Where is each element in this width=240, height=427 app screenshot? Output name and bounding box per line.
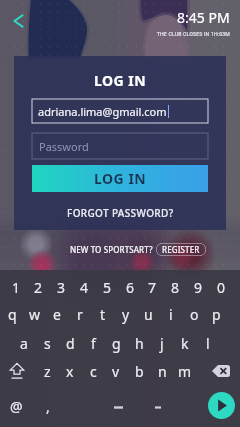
button[interactable]: 6 bbox=[119, 274, 141, 300]
staticText: 4 bbox=[80, 278, 89, 297]
button[interactable]: LOG IN bbox=[32, 165, 208, 192]
button[interactable]: 9 bbox=[187, 274, 209, 300]
staticText: 0 bbox=[217, 278, 226, 297]
staticText: t bbox=[100, 305, 106, 324]
button[interactable]: d bbox=[59, 330, 81, 356]
button[interactable]: k bbox=[174, 330, 196, 356]
button[interactable]: j bbox=[151, 330, 173, 356]
staticText: l bbox=[206, 334, 210, 353]
button[interactable]: 1 bbox=[5, 274, 27, 300]
button[interactable]: 4 bbox=[73, 274, 95, 300]
button[interactable]: f bbox=[82, 330, 104, 356]
staticText: c bbox=[90, 362, 97, 381]
button[interactable]: 5 bbox=[96, 274, 118, 300]
staticText: f bbox=[91, 334, 96, 353]
staticText: Password bbox=[39, 139, 89, 154]
staticText: 6 bbox=[126, 278, 135, 297]
staticText: NEW TO SPORTSART? bbox=[70, 244, 153, 255]
button[interactable]: c bbox=[82, 358, 104, 384]
button[interactable]: Backspace bbox=[208, 358, 234, 384]
staticText: z bbox=[44, 362, 51, 381]
button[interactable]: r bbox=[69, 301, 91, 327]
staticText: w bbox=[29, 305, 41, 324]
staticText: e bbox=[53, 305, 61, 324]
staticText: 2 bbox=[34, 278, 43, 297]
staticText: d bbox=[66, 334, 75, 353]
button[interactable]: u bbox=[137, 301, 159, 327]
button[interactable]: Shift bbox=[4, 358, 30, 384]
button[interactable]: z bbox=[36, 358, 58, 384]
staticText: s bbox=[44, 334, 51, 353]
staticText: y bbox=[122, 305, 130, 324]
staticText: x bbox=[66, 362, 74, 381]
button[interactable]: REGISTER bbox=[156, 243, 206, 256]
button[interactable]: e bbox=[46, 301, 68, 327]
button[interactable]: adriana.lima@gmail.com bbox=[32, 99, 208, 123]
staticText: LOG IN bbox=[94, 169, 147, 188]
staticText: 8 bbox=[171, 278, 180, 297]
button[interactable]: w bbox=[24, 301, 46, 327]
button[interactable]: @ bbox=[5, 393, 27, 419]
button[interactable]: y bbox=[115, 301, 137, 327]
button[interactable] bbox=[146, 394, 170, 420]
staticText: m bbox=[178, 362, 192, 381]
staticText: u bbox=[144, 305, 153, 324]
staticText: @ bbox=[10, 397, 23, 416]
staticText: j bbox=[160, 334, 164, 353]
staticText: 1 bbox=[12, 278, 21, 297]
staticText: a bbox=[20, 334, 28, 353]
staticText: b bbox=[135, 362, 144, 381]
button[interactable]: s bbox=[36, 330, 58, 356]
staticText: LOG IN bbox=[14, 71, 226, 90]
staticText: h bbox=[135, 334, 144, 353]
staticText: p bbox=[212, 305, 221, 324]
staticText: i bbox=[169, 305, 173, 324]
button[interactable]: 2 bbox=[27, 274, 49, 300]
button[interactable]: g bbox=[105, 330, 127, 356]
staticText: n bbox=[158, 362, 167, 381]
staticText: 3 bbox=[57, 278, 66, 297]
button[interactable]: , bbox=[37, 393, 59, 419]
staticText: 7 bbox=[148, 278, 157, 297]
button[interactable]: 7 bbox=[141, 274, 163, 300]
button[interactable]: o bbox=[183, 301, 205, 327]
staticText: THE CLUB CLOSES IN 1H:03M bbox=[156, 30, 230, 37]
staticText: adriana.lima@gmail.com bbox=[38, 104, 167, 119]
button[interactable]: m bbox=[174, 358, 196, 384]
button[interactable]: FORGOT PASSWORD? bbox=[14, 203, 226, 223]
button[interactable]: Space bbox=[78, 394, 158, 420]
button[interactable]: x bbox=[59, 358, 81, 384]
staticText: 8:45 PM bbox=[177, 8, 230, 27]
staticText: q bbox=[8, 305, 17, 324]
staticText: FORGOT PASSWORD? bbox=[67, 206, 174, 220]
button[interactable]: Send bbox=[203, 387, 239, 423]
staticText: v bbox=[112, 362, 120, 381]
staticText: r bbox=[77, 305, 83, 324]
button[interactable]: b bbox=[128, 358, 150, 384]
staticText: 9 bbox=[194, 278, 203, 297]
button[interactable]: 8 bbox=[164, 274, 186, 300]
button[interactable]: t bbox=[92, 301, 114, 327]
button[interactable]: 3 bbox=[50, 274, 72, 300]
staticText: , bbox=[46, 397, 50, 416]
button[interactable]: q bbox=[1, 301, 23, 327]
button[interactable]: 0 bbox=[210, 274, 232, 300]
button[interactable]: Password bbox=[32, 133, 208, 159]
button[interactable]: n bbox=[151, 358, 173, 384]
button[interactable]: h bbox=[128, 330, 150, 356]
staticText: REGISTER bbox=[162, 244, 200, 255]
button[interactable]: p bbox=[205, 301, 227, 327]
staticText: k bbox=[181, 334, 189, 353]
button[interactable]: i bbox=[160, 301, 182, 327]
button[interactable]: Back bbox=[11, 13, 27, 29]
button[interactable]: l bbox=[197, 330, 219, 356]
staticText: o bbox=[190, 305, 199, 324]
staticText: 5 bbox=[103, 278, 112, 297]
button[interactable]: a bbox=[13, 330, 35, 356]
button[interactable]: v bbox=[105, 358, 127, 384]
staticText: g bbox=[112, 334, 121, 353]
